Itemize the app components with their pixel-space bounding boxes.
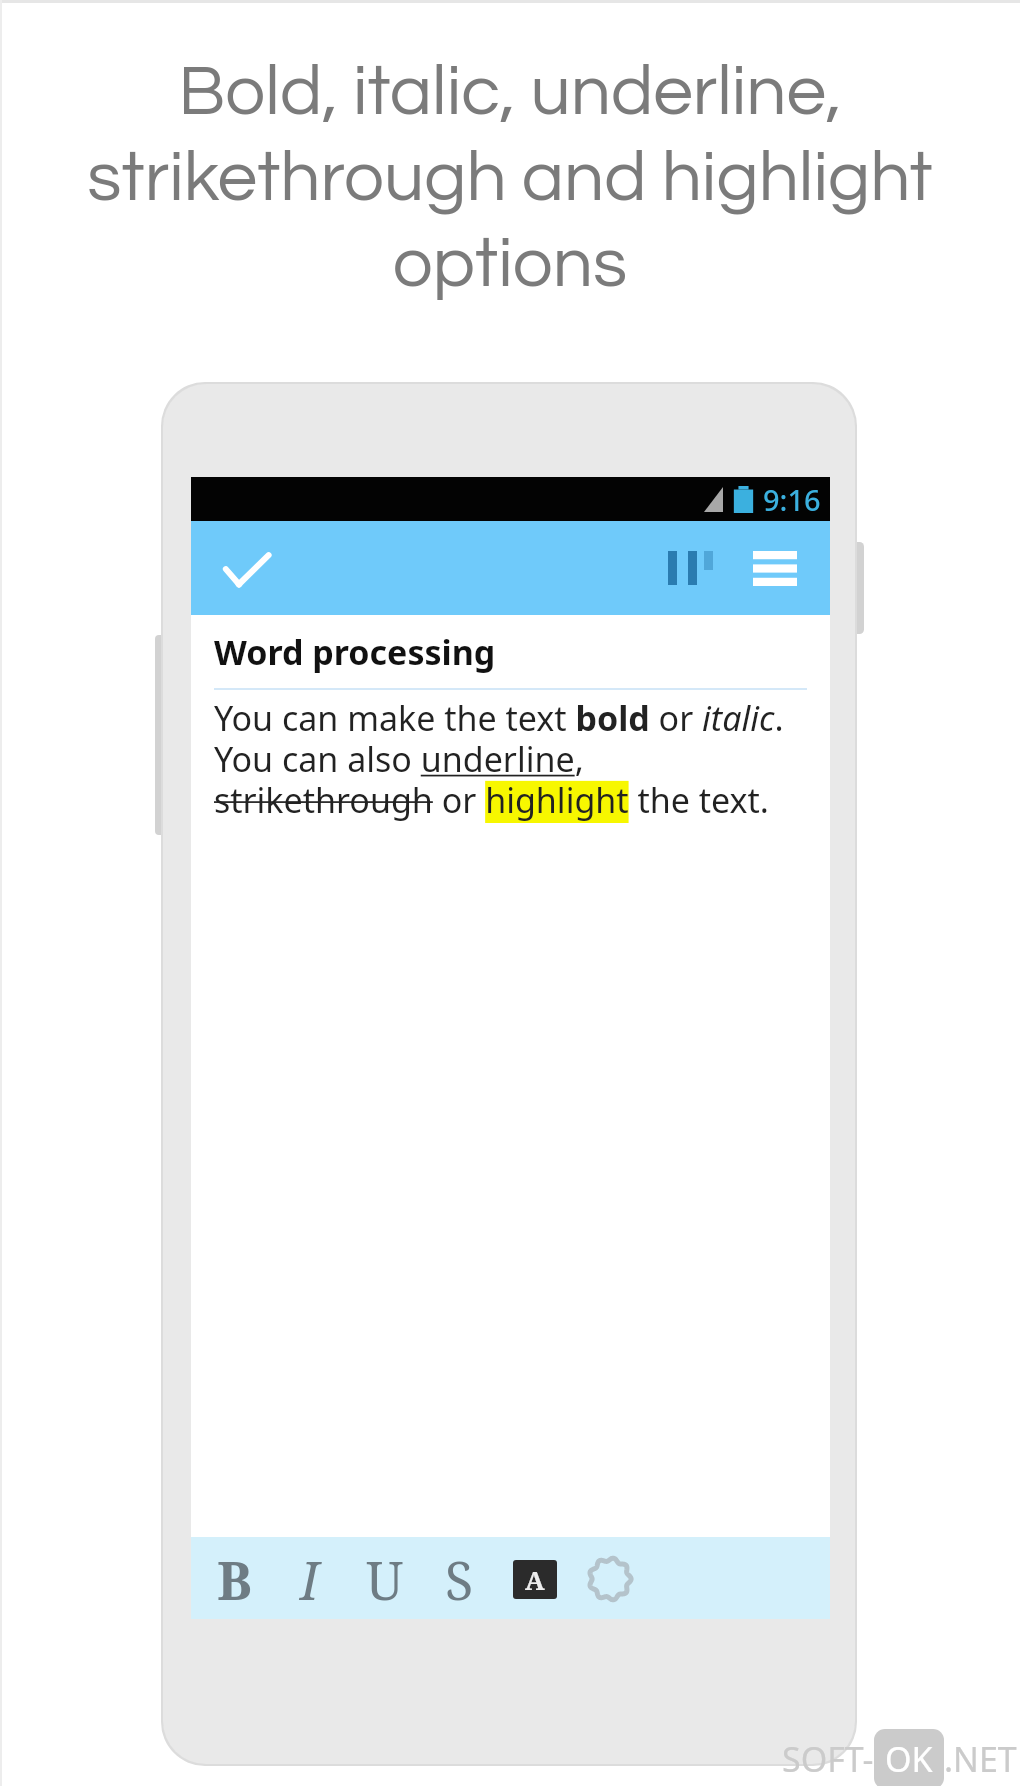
button[interactable]: Text colour	[572, 1538, 647, 1620]
staticText: OK	[885, 1736, 933, 1782]
staticText: SOFT-	[782, 1736, 874, 1782]
staticText: 9:16	[763, 480, 821, 519]
staticText: S	[445, 1544, 474, 1615]
button[interactable]: B	[197, 1538, 272, 1620]
button[interactable]: Done	[191, 521, 291, 615]
button[interactable]: I	[272, 1538, 347, 1620]
staticText: U	[366, 1544, 404, 1615]
button[interactable]: Highlight	[497, 1538, 572, 1620]
staticText: B	[217, 1544, 252, 1615]
button[interactable]: U	[347, 1538, 422, 1620]
staticText: Bold, italic, underline, strikethrough a…	[0, 56, 1020, 301]
button[interactable]: Menu	[736, 521, 814, 615]
button[interactable]: S	[422, 1538, 497, 1620]
staticText: .NET	[944, 1736, 1017, 1782]
staticText: I	[300, 1544, 320, 1615]
staticText: You can make the text bold or italic. Yo…	[214, 695, 792, 823]
staticText: Word processing	[214, 629, 496, 675]
button[interactable]: Text formatting	[666, 521, 752, 615]
staticText: A	[525, 1562, 545, 1597]
